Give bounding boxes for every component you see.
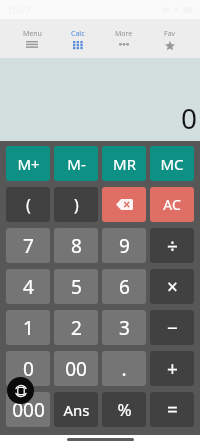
- staticText: +: [167, 356, 178, 382]
- staticText: .: [121, 356, 127, 382]
- button[interactable]: Calc: [55, 19, 101, 58]
- button[interactable]: M+: [6, 146, 50, 181]
- button[interactable]: +: [150, 351, 194, 386]
- staticText: AC: [163, 195, 181, 214]
- button[interactable]: =: [150, 392, 194, 427]
- button[interactable]: M-: [54, 146, 98, 181]
- button[interactable]: More: [101, 19, 147, 58]
- staticText: Calc: [71, 29, 85, 39]
- button[interactable]: 00: [54, 351, 98, 386]
- button[interactable]: (: [6, 187, 50, 222]
- button[interactable]: MC: [150, 146, 194, 181]
- staticText: More: [115, 29, 133, 39]
- staticText: MC: [160, 154, 184, 174]
- button[interactable]: 1: [6, 310, 50, 345]
- button[interactable]: MR: [102, 146, 146, 181]
- staticText: 2: [71, 315, 82, 341]
- staticText: %: [117, 398, 132, 421]
- button[interactable]: −: [150, 310, 194, 345]
- button[interactable]: ÷: [150, 228, 194, 263]
- staticText: Menu: [23, 29, 42, 39]
- staticText: 5: [71, 274, 82, 300]
- staticText: 3: [119, 315, 130, 341]
- staticText: ×: [167, 274, 178, 300]
- staticText: (: [26, 194, 31, 216]
- staticText: 000: [12, 397, 45, 423]
- staticText: 0: [181, 99, 198, 137]
- button[interactable]: 000: [6, 392, 50, 427]
- staticText: 00: [65, 356, 87, 382]
- button[interactable]: 3: [102, 310, 146, 345]
- staticText: =: [167, 397, 178, 423]
- button[interactable]: 5: [54, 269, 98, 304]
- button[interactable]: %: [102, 392, 146, 427]
- staticText: M+: [17, 154, 40, 174]
- staticText: Ans: [63, 400, 90, 420]
- staticText: 8: [71, 233, 82, 259]
- button[interactable]: 8: [54, 228, 98, 263]
- staticText: M-: [67, 154, 86, 174]
- staticText: 7: [23, 233, 34, 259]
- button[interactable]: 0: [6, 351, 50, 386]
- button[interactable]: 2: [54, 310, 98, 345]
- staticText: −: [167, 315, 178, 341]
- button[interactable]: Ans: [54, 392, 98, 427]
- button[interactable]: Rotate screen: [7, 377, 34, 404]
- staticText: 0: [23, 356, 34, 382]
- staticText: 9: [119, 233, 130, 259]
- button[interactable]: Fav: [147, 19, 193, 58]
- button[interactable]: ): [54, 187, 98, 222]
- button[interactable]: 9: [102, 228, 146, 263]
- button[interactable]: 4: [6, 269, 50, 304]
- staticText: 6: [119, 274, 130, 300]
- staticText: 4: [23, 274, 34, 300]
- staticText: ÷: [167, 233, 178, 259]
- button[interactable]: Backspace: [102, 187, 146, 222]
- button[interactable]: Menu: [9, 19, 55, 58]
- staticText: MR: [113, 154, 136, 174]
- button[interactable]: 7: [6, 228, 50, 263]
- staticText: ): [74, 194, 79, 216]
- staticText: Fav: [164, 29, 176, 39]
- button[interactable]: AC: [150, 187, 194, 222]
- button[interactable]: 6: [102, 269, 146, 304]
- button[interactable]: .: [102, 351, 146, 386]
- button[interactable]: ×: [150, 269, 194, 304]
- staticText: 1: [23, 315, 34, 341]
